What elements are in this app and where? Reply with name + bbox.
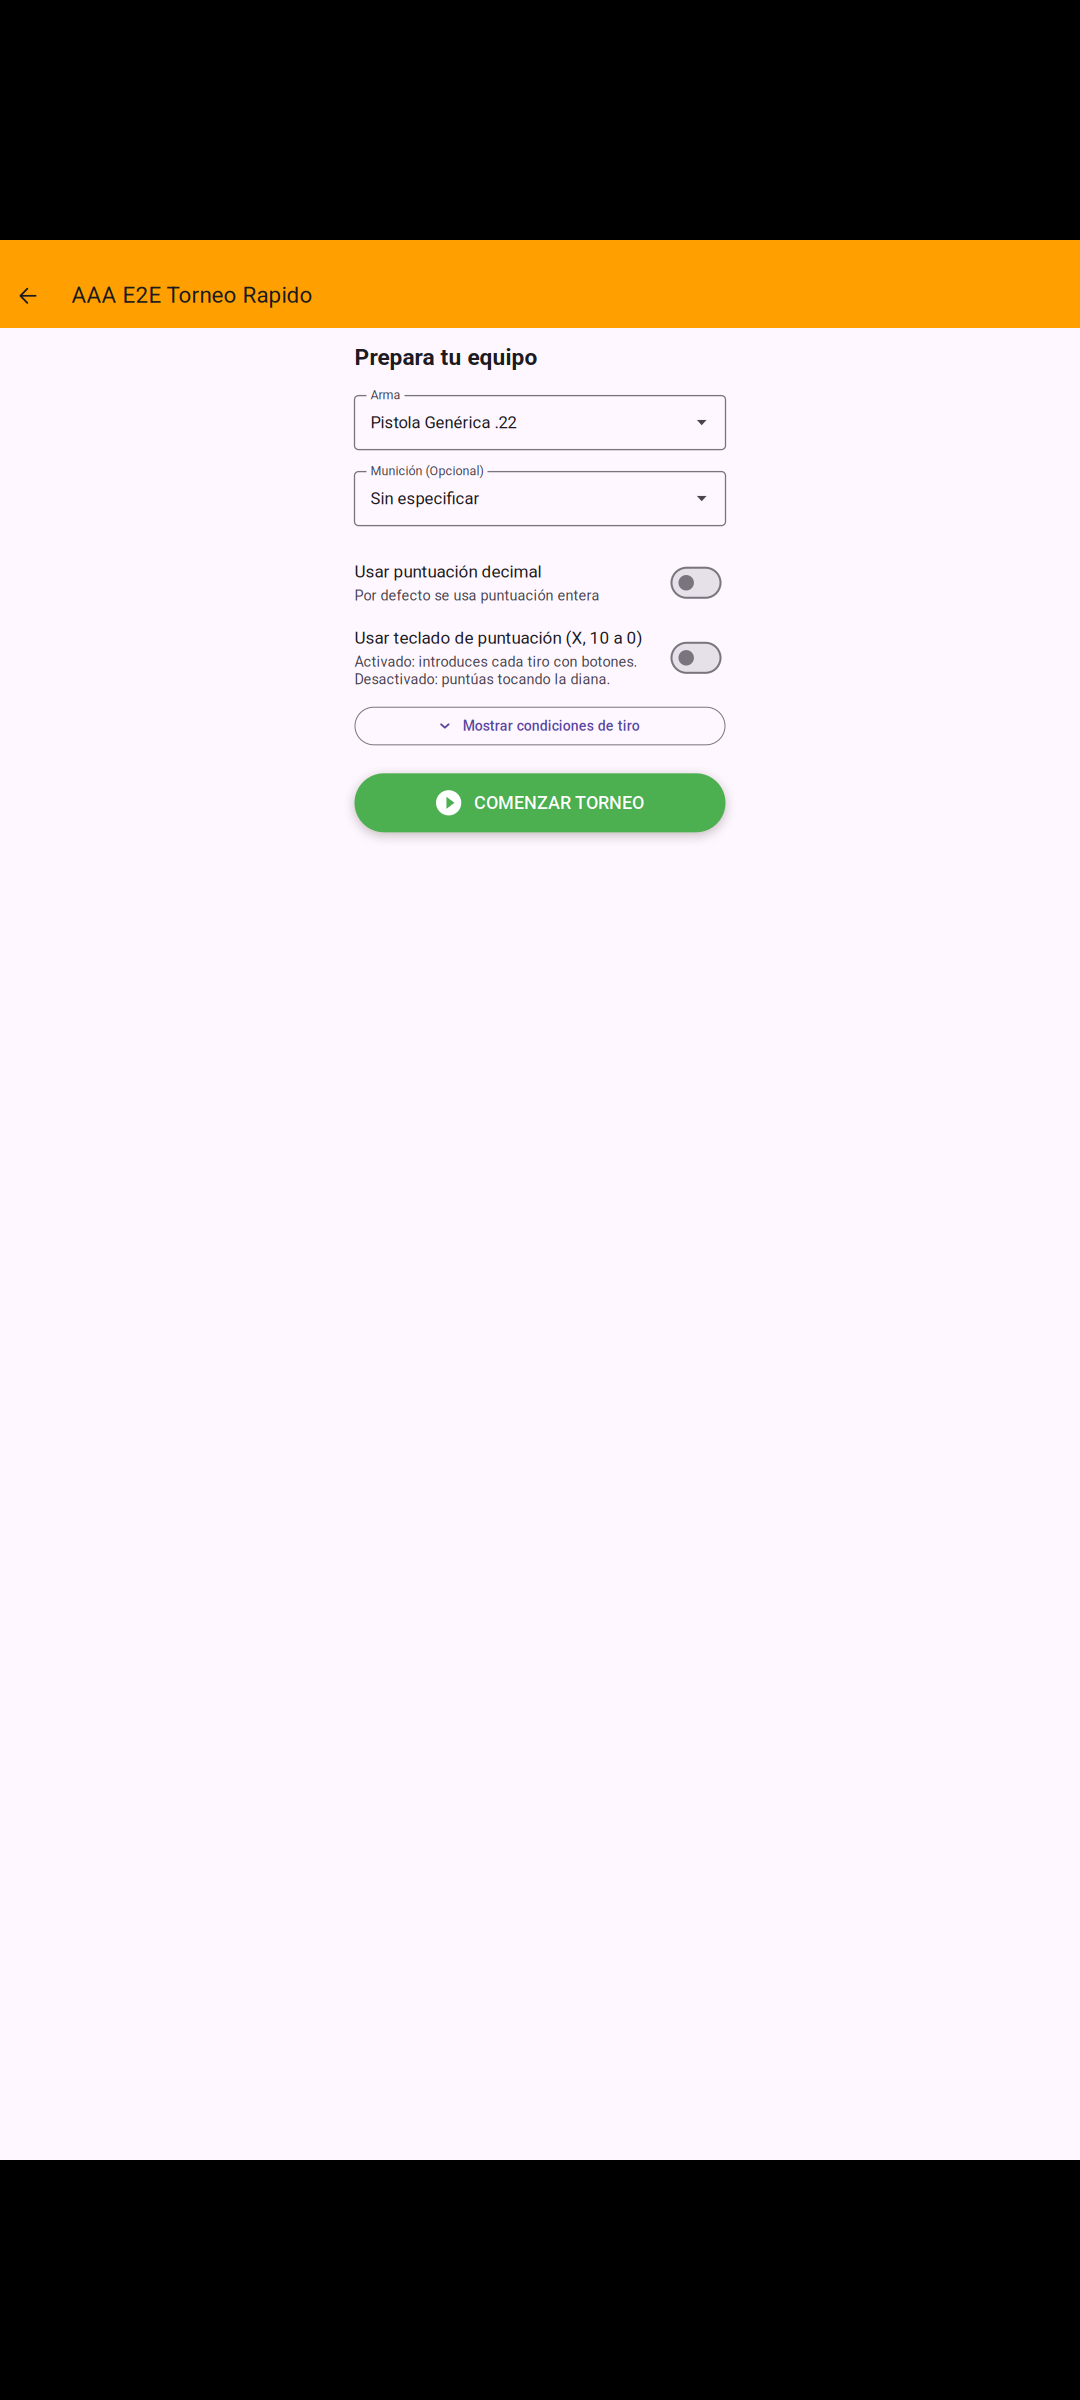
staticText: Arma (370, 388, 400, 402)
staticText: Activado: introduces cada tiro con boton… (354, 653, 637, 670)
staticText: Munición (Opcional) (370, 464, 483, 478)
staticText: COMENZAR TORNEO (474, 792, 644, 813)
button[interactable]: Sin especificar (354, 472, 725, 526)
staticText: Prepara tu equipo (354, 344, 537, 371)
staticText: Mostrar condiciones de tiro (463, 718, 640, 734)
staticText: Usar puntuación decimal (354, 562, 541, 582)
button[interactable]: Back (4, 272, 52, 320)
button[interactable]: Mostrar condiciones de tiro (354, 707, 725, 745)
button[interactable]: Usar puntuación decimal (354, 562, 725, 604)
staticText: Desactivado: puntúas tocando la diana. (354, 671, 610, 688)
staticText: Sin especificar (370, 489, 479, 508)
button[interactable]: Pistola Genérica .22 (354, 396, 725, 450)
staticText: AAA E2E Torneo Rapido (71, 282, 312, 308)
staticText: Por defecto se usa puntuación entera (354, 587, 599, 604)
button[interactable]: COMENZAR TORNEO (354, 773, 725, 832)
staticText: Usar teclado de puntuación (X, 10 a 0) (354, 628, 642, 648)
staticText: Pistola Genérica .22 (370, 413, 516, 432)
button[interactable]: Usar teclado de puntuación (X, 10 a 0) (354, 628, 725, 688)
